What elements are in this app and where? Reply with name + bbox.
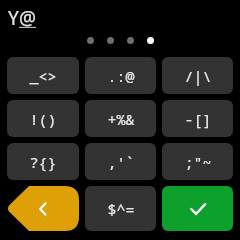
button[interactable]: _<> [7,57,79,94]
button[interactable]: ?{} [7,143,79,180]
staticText: .:@ [107,66,135,86]
staticText: ?{} [29,152,57,172]
button[interactable]: +%& [85,100,156,137]
staticText: @ [19,5,37,31]
button[interactable]: Enter [162,186,233,231]
staticText: ,'` [107,152,135,172]
button[interactable]: -[] [162,100,233,137]
staticText: $^= [107,199,135,219]
staticText: +%& [107,109,135,129]
staticText: !() [29,109,57,129]
staticText: /|\ [184,66,212,86]
staticText: _<> [29,66,57,86]
button[interactable]: $^= [85,186,156,231]
staticText: ;"~ [184,152,212,172]
button[interactable]: /|\ [162,57,233,94]
button[interactable]: ;"~ [162,143,233,180]
staticText: Y [8,5,19,31]
button[interactable]: .:@ [85,57,156,94]
button[interactable]: ,'` [85,143,156,180]
button[interactable]: !() [7,100,79,137]
button[interactable]: Backspace [7,186,79,231]
staticText: -[] [184,109,212,129]
